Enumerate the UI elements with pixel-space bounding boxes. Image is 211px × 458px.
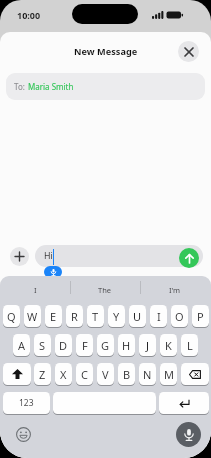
staticText: U <box>133 309 142 324</box>
button[interactable]: I <box>0 281 70 298</box>
staticText: A <box>18 338 26 353</box>
button[interactable]: R <box>66 305 83 327</box>
staticText: G <box>101 338 110 353</box>
staticText: H <box>122 338 131 353</box>
button[interactable]: A <box>13 334 30 356</box>
button[interactable]: L <box>181 334 198 356</box>
staticText: I'm <box>169 285 181 295</box>
staticText: P <box>197 309 204 324</box>
staticText: W <box>27 309 38 324</box>
button[interactable]: K <box>160 334 177 356</box>
staticText: M <box>164 367 174 382</box>
button[interactable]: N <box>139 363 156 385</box>
button[interactable]: E <box>45 305 62 327</box>
button[interactable]: S <box>34 334 51 356</box>
button[interactable]: J <box>139 334 156 356</box>
staticText: 10:00 <box>17 9 41 21</box>
staticText: V <box>102 367 109 382</box>
button[interactable]: I <box>150 305 167 327</box>
staticText: B <box>123 367 131 382</box>
button[interactable]: To: <box>6 73 205 100</box>
button[interactable]: M <box>160 363 177 385</box>
button[interactable]: P <box>192 305 209 327</box>
button[interactable] <box>15 426 31 442</box>
button[interactable]: I'm <box>140 281 210 298</box>
button[interactable]: Y <box>108 305 125 327</box>
staticText: Z <box>39 367 46 382</box>
button[interactable]: 123 <box>3 392 50 414</box>
button[interactable] <box>3 363 31 385</box>
button[interactable] <box>10 247 29 266</box>
staticText: 123 <box>19 397 34 409</box>
staticText: R <box>71 309 78 324</box>
staticText: The <box>98 285 112 295</box>
button[interactable]: F <box>76 334 93 356</box>
staticText: To: <box>14 81 25 92</box>
staticText: T <box>92 309 99 324</box>
button[interactable]: T <box>87 305 104 327</box>
button[interactable] <box>53 392 156 414</box>
staticText: C <box>81 367 88 382</box>
staticText: New Message <box>74 45 138 58</box>
button[interactable]: O <box>171 305 188 327</box>
staticText: J <box>146 338 150 353</box>
button[interactable]: W <box>24 305 41 327</box>
button[interactable] <box>176 422 201 447</box>
staticText: I <box>34 285 37 295</box>
staticText: O <box>175 309 184 324</box>
button[interactable] <box>159 392 209 414</box>
button[interactable]: D <box>55 334 72 356</box>
button[interactable] <box>179 248 199 268</box>
button[interactable]: C <box>76 363 93 385</box>
button[interactable]: B <box>118 363 135 385</box>
button[interactable]: The <box>70 281 140 298</box>
button[interactable] <box>178 41 199 62</box>
button[interactable]: X <box>55 363 72 385</box>
staticText: F <box>82 338 88 353</box>
staticText: X <box>60 367 67 382</box>
staticText: Hi <box>44 250 53 262</box>
staticText: Y <box>113 309 120 324</box>
button[interactable]: G <box>97 334 114 356</box>
button[interactable] <box>181 363 209 385</box>
staticText: D <box>59 338 68 353</box>
button[interactable]: Q <box>3 305 20 327</box>
button[interactable]: Z <box>34 363 51 385</box>
staticText: L <box>187 338 193 353</box>
button[interactable]: V <box>97 363 114 385</box>
button[interactable]: H <box>118 334 135 356</box>
staticText: Q <box>7 309 16 324</box>
staticText: K <box>165 338 172 353</box>
staticText: Maria Smith <box>28 81 74 92</box>
button[interactable]: U <box>129 305 146 327</box>
staticText: I <box>157 309 161 324</box>
staticText: S <box>39 338 46 353</box>
staticText: E <box>50 309 57 324</box>
staticText: N <box>143 367 152 382</box>
button[interactable]: Hi <box>35 245 203 267</box>
